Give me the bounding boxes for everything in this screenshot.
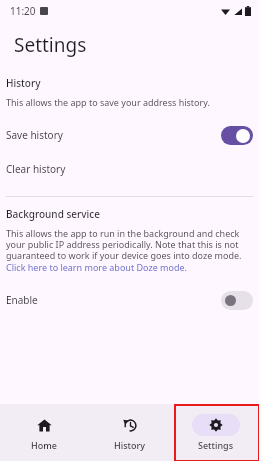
staticText: History [114,439,146,451]
staticText: Background service [6,207,100,221]
other: Home [37,418,52,433]
button[interactable]: History [87,404,173,461]
staticText: Save history [6,128,63,142]
staticText: 11:20 [10,4,36,18]
button[interactable]: Save history [0,118,259,152]
button[interactable]: Click here to learn more about Doze mode… [6,261,187,273]
other: History [123,418,138,433]
button[interactable]: Home [0,404,87,461]
button[interactable]: Clear history [0,152,259,186]
staticText: This allows the app to run in the backgr… [6,227,251,261]
button[interactable]: Settings [173,404,259,461]
staticText: Clear history [6,162,66,176]
staticText: Settings [198,439,234,451]
staticText: This allows the app to save your address… [6,96,210,108]
staticText: Settings [14,32,87,58]
staticText: History [6,76,41,90]
staticText: Home [31,439,57,451]
other: Settings [209,418,223,432]
button[interactable]: Enable [0,283,259,317]
staticText: Enable [6,293,38,307]
